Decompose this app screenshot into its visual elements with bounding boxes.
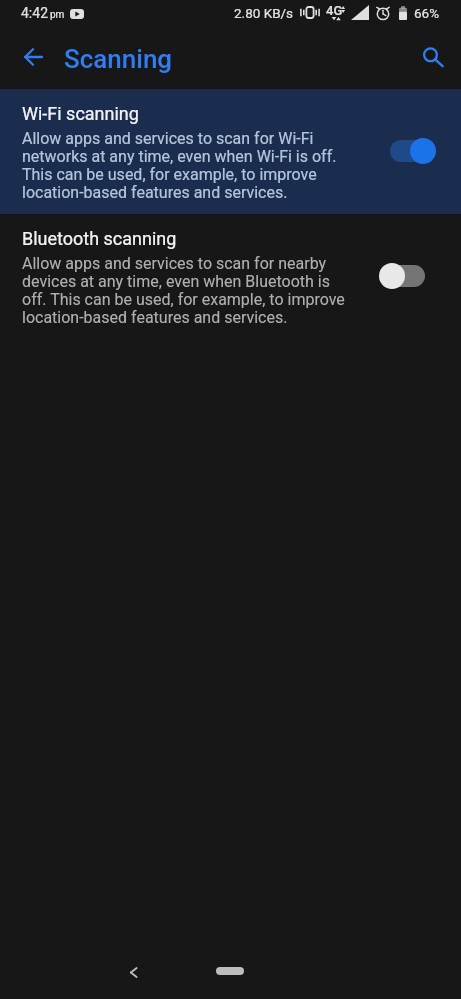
button[interactable]: Back	[113, 952, 153, 992]
staticText: 4G	[326, 3, 343, 18]
button[interactable]: Wi-Fi scanning	[0, 89, 461, 214]
staticText: Allow apps and services to scan for Wi-F…	[22, 129, 337, 202]
staticText: Allow apps and services to scan for near…	[22, 254, 345, 327]
staticText: 66%	[414, 5, 440, 21]
button[interactable]: Toggle off	[379, 258, 437, 298]
staticText: Scanning	[64, 44, 173, 74]
staticText: Wi-Fi scanning	[22, 103, 139, 124]
button[interactable]: Search	[397, 25, 461, 89]
button[interactable]: Toggle on	[379, 133, 437, 173]
staticText: 4:42	[21, 5, 48, 21]
button[interactable]: Bluetooth scanning	[0, 214, 461, 339]
button[interactable]: Navigate up	[0, 25, 64, 89]
staticText: pm	[50, 9, 65, 21]
staticText: Bluetooth scanning	[22, 228, 177, 249]
staticText: 2.80 KB/s	[234, 5, 294, 21]
